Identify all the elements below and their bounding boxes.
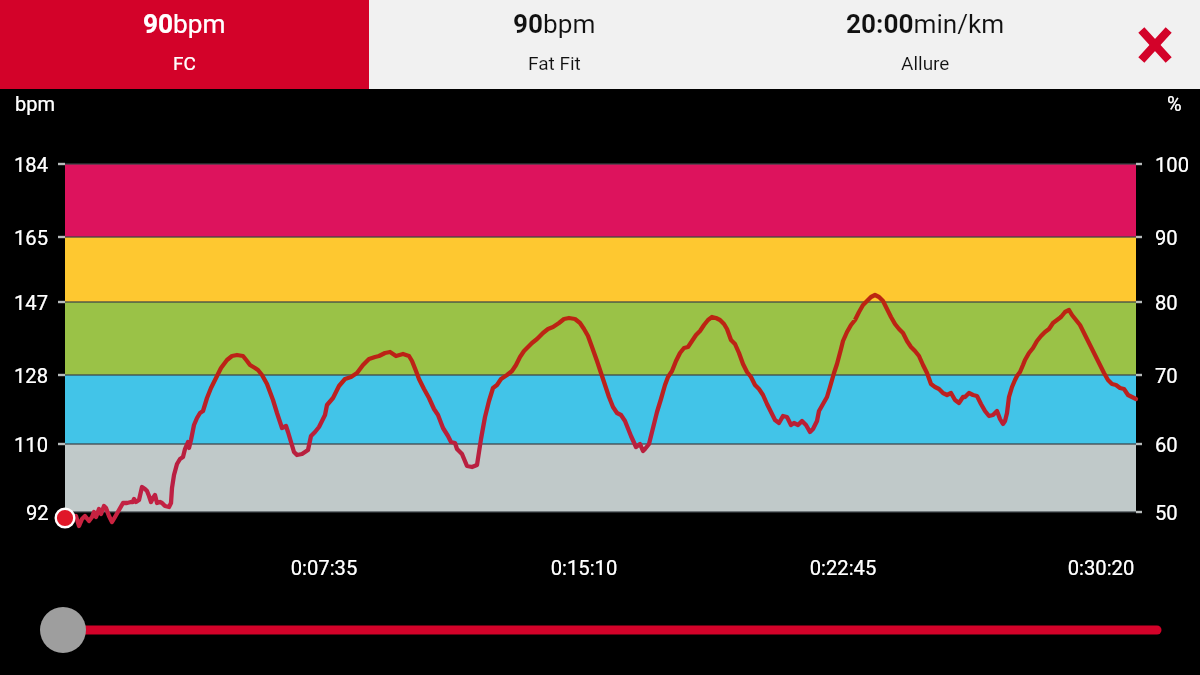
staticText: % xyxy=(1167,92,1182,115)
staticText: 184 xyxy=(14,153,49,177)
button[interactable]: 90bpm xyxy=(0,0,369,89)
staticText: 110 xyxy=(14,433,49,457)
staticText: 70 xyxy=(1155,364,1178,388)
button[interactable]: Close xyxy=(1110,0,1200,89)
staticText: 90bpm xyxy=(143,9,226,40)
staticText: 90 xyxy=(1155,226,1178,250)
staticText: 92 xyxy=(26,501,49,525)
button[interactable]: 90bpm xyxy=(369,0,740,89)
staticText: 0:30:20 xyxy=(1031,556,1171,580)
staticText: 0:22:45 xyxy=(773,556,913,580)
staticText: 0:15:10 xyxy=(514,556,654,580)
staticText: 100 xyxy=(1155,153,1190,177)
staticText: FC xyxy=(173,52,196,74)
staticText: 128 xyxy=(14,364,49,388)
staticText: Allure xyxy=(901,52,950,74)
staticText: 147 xyxy=(14,291,49,315)
staticText: 50 xyxy=(1155,501,1178,525)
staticText: 20:00min/km xyxy=(846,9,1005,40)
staticText: Fat Fit xyxy=(528,52,581,74)
staticText: 80 xyxy=(1155,291,1178,315)
button[interactable]: 20:00min/km xyxy=(740,0,1110,89)
staticText: 90bpm xyxy=(513,9,596,40)
staticText: 0:07:35 xyxy=(254,556,394,580)
button[interactable]: Seek position in workout xyxy=(0,592,1200,668)
staticText: bpm xyxy=(15,92,55,115)
staticText: 60 xyxy=(1155,433,1178,457)
staticText: 165 xyxy=(14,226,49,250)
